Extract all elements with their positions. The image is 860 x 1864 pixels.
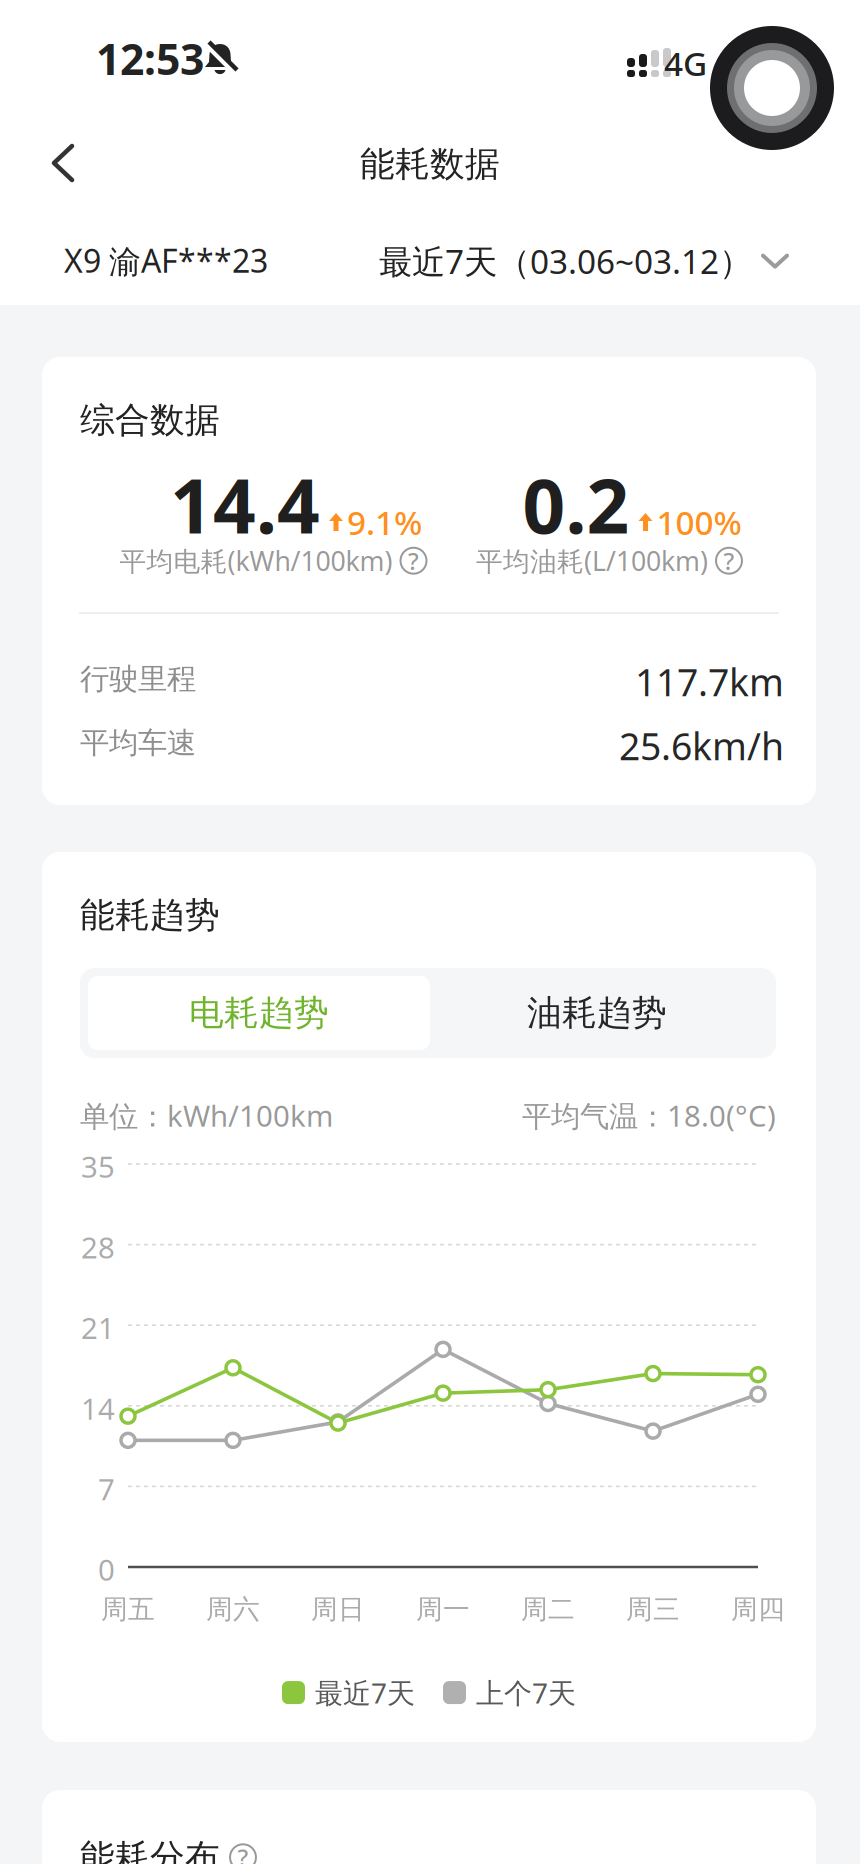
staticText: 能耗数据	[360, 143, 500, 186]
staticText: 14	[81, 1389, 115, 1428]
staticText: 周五	[101, 1593, 155, 1626]
button[interactable]: Back	[38, 130, 90, 196]
staticText: 最近7天	[315, 1674, 415, 1711]
staticText: 4G	[664, 41, 707, 85]
staticText: 0	[98, 1550, 115, 1589]
staticText: 平均电耗(kWh/100km)	[119, 543, 392, 578]
staticText: 14.4	[170, 455, 320, 554]
staticText: X9 渝AF***23	[64, 239, 268, 282]
staticText: 最近7天（03.06~03.12）	[379, 239, 752, 283]
button[interactable]: 油耗趋势	[426, 976, 768, 1050]
staticText: 28	[81, 1228, 115, 1267]
button[interactable]: 说明	[716, 548, 742, 574]
staticText: 行驶里程	[80, 661, 196, 697]
staticText: 平均油耗(L/100km)	[476, 543, 708, 578]
button[interactable]: 电耗趋势	[88, 976, 430, 1050]
staticText: 117.7km	[635, 657, 784, 707]
button[interactable]: 说明	[230, 1844, 256, 1864]
staticText: 周六	[206, 1593, 260, 1626]
button[interactable]: 最近7天（03.06~03.12）	[308, 239, 788, 283]
staticText: ?	[408, 545, 419, 577]
staticText: 100%	[656, 500, 741, 544]
staticText: 能耗趋势	[80, 894, 220, 937]
button[interactable]: 说明	[400, 548, 426, 574]
staticText: 25.6km/h	[619, 721, 784, 771]
staticText: 12:53	[96, 30, 204, 87]
staticText: 上个7天	[476, 1674, 576, 1711]
staticText: 电耗趋势	[189, 992, 329, 1034]
staticText: 能耗分布	[80, 1836, 220, 1864]
staticText: 21	[81, 1308, 115, 1347]
staticText: 35	[81, 1147, 115, 1186]
staticText: 平均气温：18.0(°C)	[522, 1096, 776, 1135]
staticText: 平均车速	[80, 725, 196, 761]
staticText: ?	[237, 1841, 248, 1864]
staticText: ?	[723, 545, 734, 577]
staticText: 周一	[416, 1593, 470, 1626]
staticText: 油耗趋势	[527, 992, 667, 1034]
staticText: 0.2	[522, 455, 629, 554]
staticText: 周日	[311, 1593, 365, 1626]
staticText: 单位：kWh/100km	[80, 1096, 333, 1135]
staticText: 9.1%	[347, 500, 422, 544]
staticText: 周三	[626, 1593, 680, 1626]
staticText: 7	[98, 1469, 115, 1508]
staticText: 周四	[731, 1593, 785, 1626]
staticText: 综合数据	[80, 399, 220, 442]
staticText: 周二	[521, 1593, 575, 1626]
